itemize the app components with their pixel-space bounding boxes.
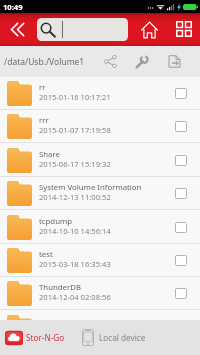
button[interactable]: Share	[0, 144, 200, 176]
staticText: test	[39, 249, 53, 260]
button[interactable]: tcpdump	[0, 211, 200, 243]
staticText: 2014-12-04 02:08:56	[39, 292, 111, 302]
button[interactable]: System Volume Information	[0, 177, 200, 209]
button[interactable]: Grid view	[167, 13, 200, 46]
button[interactable]: Select	[165, 110, 197, 142]
button[interactable]	[37, 18, 128, 41]
staticText: System Volume Information	[39, 182, 142, 193]
staticText: 2015-01-16 10:17:21	[39, 92, 111, 102]
button[interactable]: xampp	[0, 311, 200, 320]
staticText: rr	[39, 82, 46, 93]
button[interactable]: Select	[165, 211, 197, 243]
button[interactable]: test	[0, 244, 200, 276]
button[interactable]: rr	[0, 77, 200, 109]
button[interactable]: rrr	[0, 110, 200, 142]
button[interactable]: Back	[0, 13, 36, 46]
button[interactable]: Select	[165, 277, 197, 309]
staticText: tcpdump	[39, 216, 73, 227]
button[interactable]: Select	[165, 77, 197, 109]
staticText: Share	[39, 149, 60, 160]
staticText: ThunderDB	[39, 282, 81, 293]
button[interactable]: Stor-N-Go	[0, 320, 78, 355]
button[interactable]: Exit	[161, 47, 187, 76]
button[interactable]: Settings	[129, 47, 155, 76]
button[interactable]: Share	[97, 47, 123, 76]
button[interactable]: Local device	[78, 320, 200, 355]
button[interactable]: Select	[165, 177, 197, 209]
button[interactable]: ThunderDB	[0, 277, 200, 309]
staticText: 2015-01-07 17:19:58	[39, 125, 111, 135]
staticText: 2014-10-10 14:56:14	[39, 226, 111, 236]
button[interactable]: Select	[165, 144, 197, 176]
button[interactable]: Select	[165, 244, 197, 276]
staticText: Stor-N-Go	[26, 332, 65, 343]
staticText: 2015-06-17 15:19:32	[39, 159, 111, 169]
staticText: rrr	[39, 115, 49, 126]
button[interactable]: Home	[133, 13, 166, 46]
staticText: Local device	[99, 332, 146, 343]
staticText: /data/Usb./Volume1	[4, 56, 85, 68]
staticText: 2014-12-13 11:00:52	[39, 192, 111, 202]
staticText: 10:49	[3, 2, 23, 12]
staticText: 2015-03-18 16:35:43	[39, 259, 111, 269]
